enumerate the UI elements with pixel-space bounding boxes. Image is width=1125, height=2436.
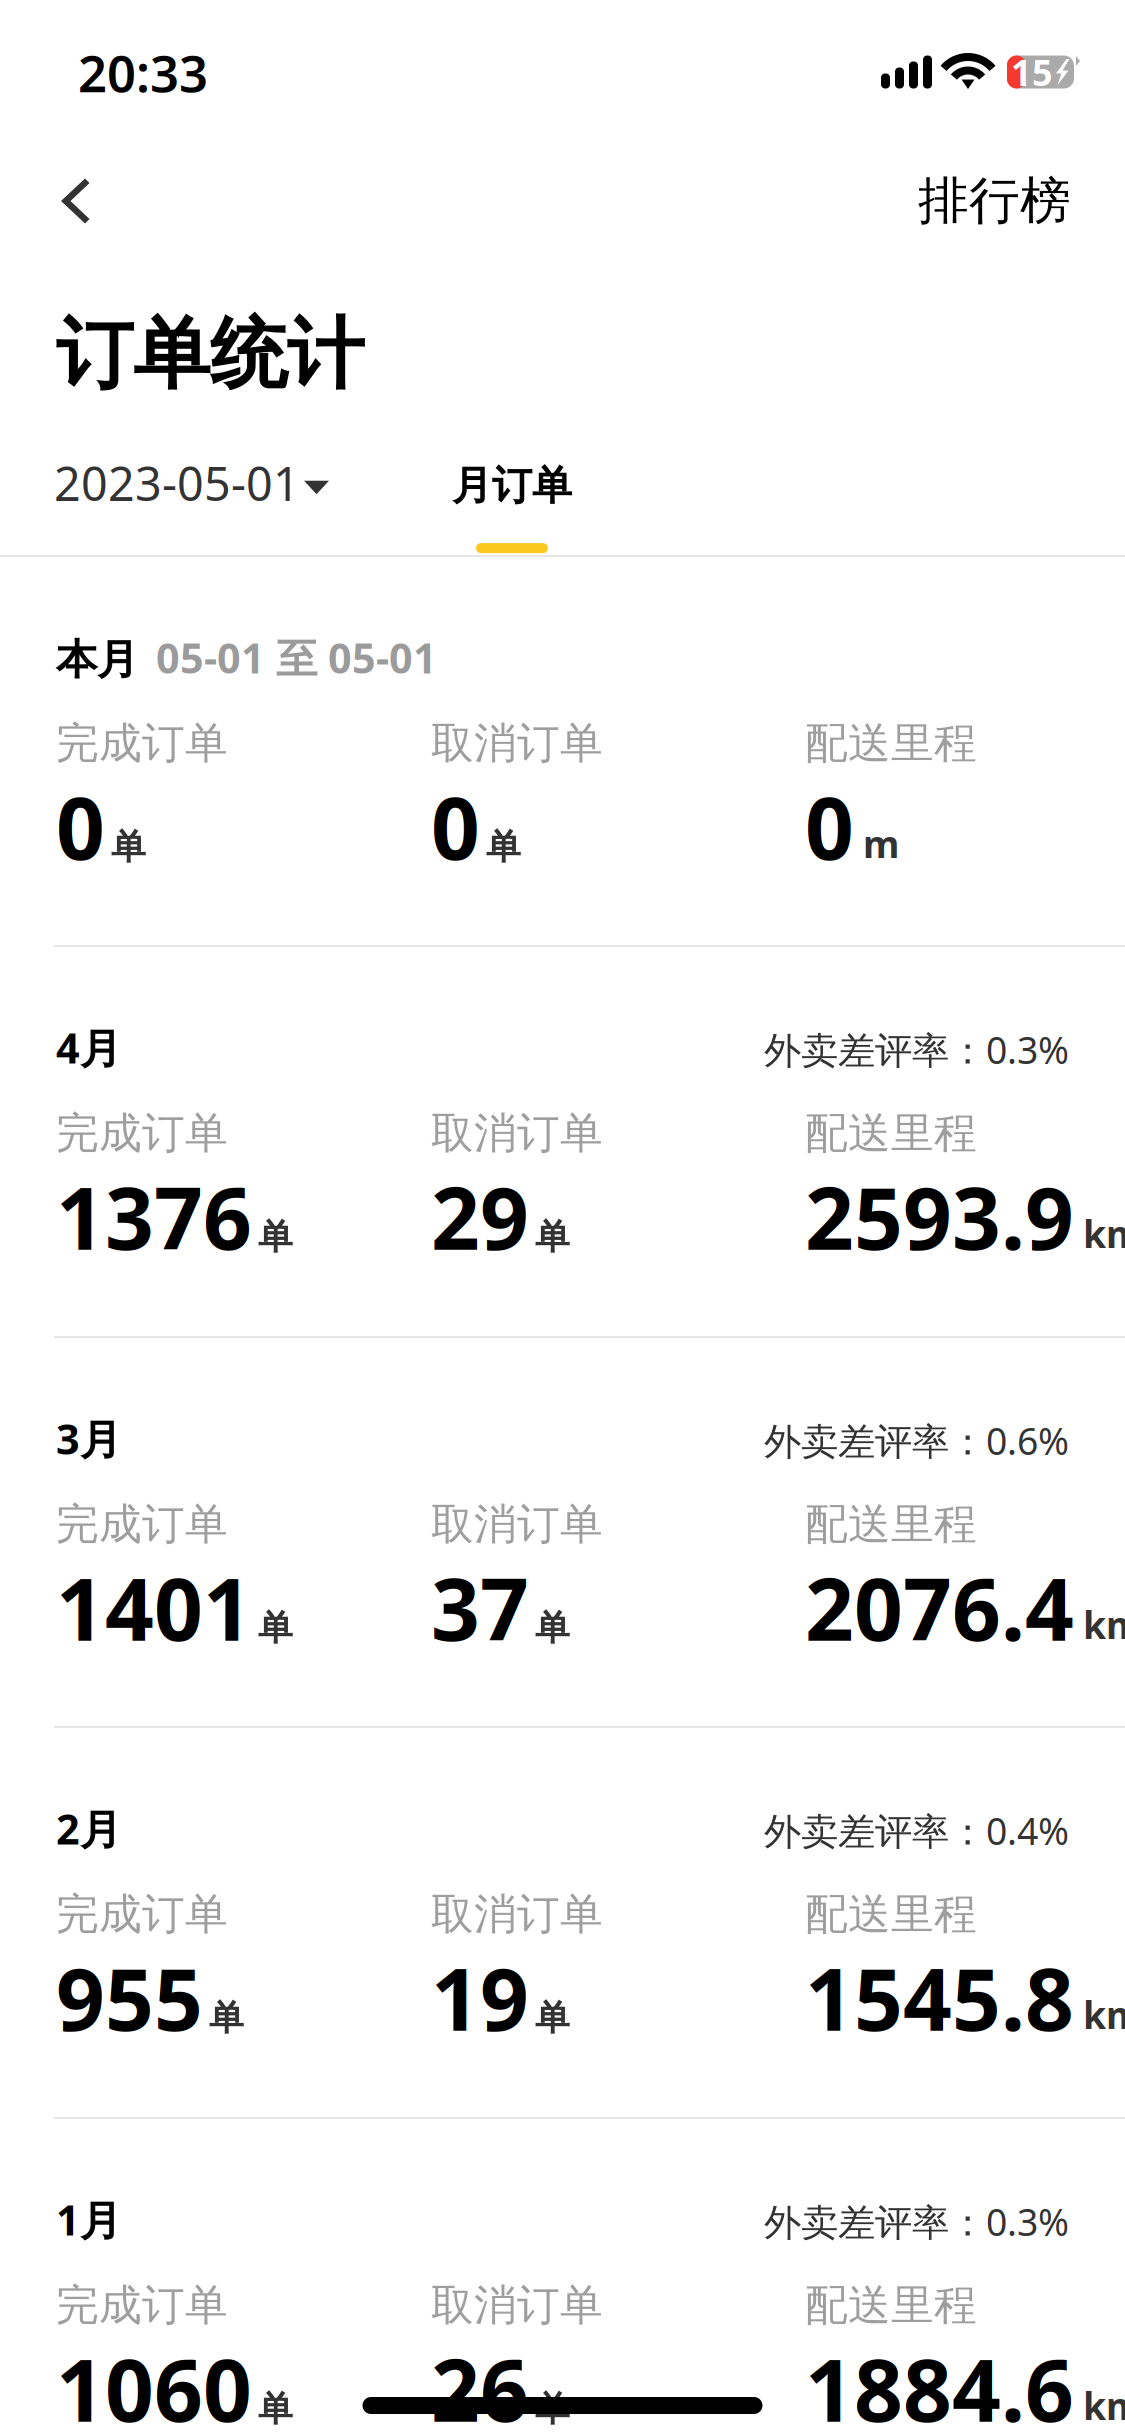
staticText: 本月 [56, 634, 138, 685]
staticText: 单 [535, 1997, 570, 2039]
staticText: 配送里程 [805, 1888, 977, 1940]
staticText: 排行榜 [918, 170, 1071, 232]
staticText: 05-01 至 05-01 [156, 630, 437, 685]
button[interactable]: 2023-05-01 [46, 442, 337, 524]
staticText: 取消订单 [431, 1888, 603, 1940]
staticText: 单 [535, 1607, 570, 1649]
staticText: 20:33 [78, 39, 208, 106]
staticText: 1376 [56, 1160, 252, 1273]
staticText: 单 [258, 1607, 293, 1649]
staticText: 月订单 [452, 461, 572, 510]
staticText: 0 [805, 770, 854, 883]
staticText: 37 [431, 1551, 529, 1664]
staticText: km [1083, 1990, 1125, 2039]
staticText: 1060 [56, 2332, 252, 2436]
staticText: 取消订单 [431, 2279, 603, 2331]
button[interactable]: Back [0, 154, 119, 247]
staticText: 完成订单 [56, 1498, 228, 1550]
staticText: 取消订单 [431, 1107, 603, 1159]
staticText: 单 [258, 1216, 293, 1258]
staticText: km [1083, 1209, 1125, 1258]
staticText: 955 [56, 1941, 203, 2054]
staticText: km [1083, 2381, 1125, 2430]
staticText: 单 [535, 2388, 570, 2430]
staticText: 2593.9 [805, 1160, 1074, 1273]
staticText: 配送里程 [805, 1498, 977, 1550]
staticText: 完成订单 [56, 1888, 228, 1940]
staticText: 1401 [56, 1551, 252, 1664]
staticText: 订单统计 [56, 307, 364, 402]
staticText: km [1083, 1600, 1125, 1649]
button[interactable]: 排行榜 [892, 146, 1125, 256]
staticText: 2月 [56, 1801, 121, 1856]
staticText: 外卖差评率：0.3% [764, 2197, 1069, 2246]
staticText: 1884.6 [805, 2332, 1074, 2436]
staticText: 单 [209, 1997, 244, 2039]
staticText: 26 [431, 2332, 529, 2436]
staticText: 2076.4 [805, 1551, 1074, 1664]
staticText: 1月 [56, 2192, 121, 2247]
staticText: 外卖差评率：0.6% [764, 1416, 1069, 1465]
staticText: 外卖差评率：0.4% [764, 1806, 1069, 1855]
staticText: 29 [431, 1160, 529, 1273]
staticText: 配送里程 [805, 1107, 977, 1159]
button[interactable]: 月订单 [434, 453, 590, 553]
staticText: 完成订单 [56, 2279, 228, 2331]
staticText: 2023-05-01 [54, 452, 300, 514]
staticText: 单 [258, 2388, 293, 2430]
staticText: 19 [431, 1941, 529, 2054]
staticText: 4月 [56, 1020, 121, 1075]
staticText: 配送里程 [805, 2279, 977, 2331]
staticText: 取消订单 [431, 717, 603, 769]
staticText: 外卖差评率：0.3% [764, 1025, 1069, 1074]
staticText: 0 [431, 770, 480, 883]
staticText: 完成订单 [56, 1107, 228, 1159]
staticText: 单 [535, 1216, 570, 1258]
staticText: m [863, 819, 899, 868]
staticText: 单 [111, 826, 146, 868]
staticText: 完成订单 [56, 717, 228, 769]
staticText: 3月 [56, 1411, 121, 1466]
staticText: 15 [1011, 48, 1053, 96]
staticText: 0 [56, 770, 105, 883]
staticText: 单 [486, 826, 521, 868]
staticText: 1545.8 [805, 1941, 1074, 2054]
staticText: 取消订单 [431, 1498, 603, 1550]
staticText: 配送里程 [805, 717, 977, 769]
